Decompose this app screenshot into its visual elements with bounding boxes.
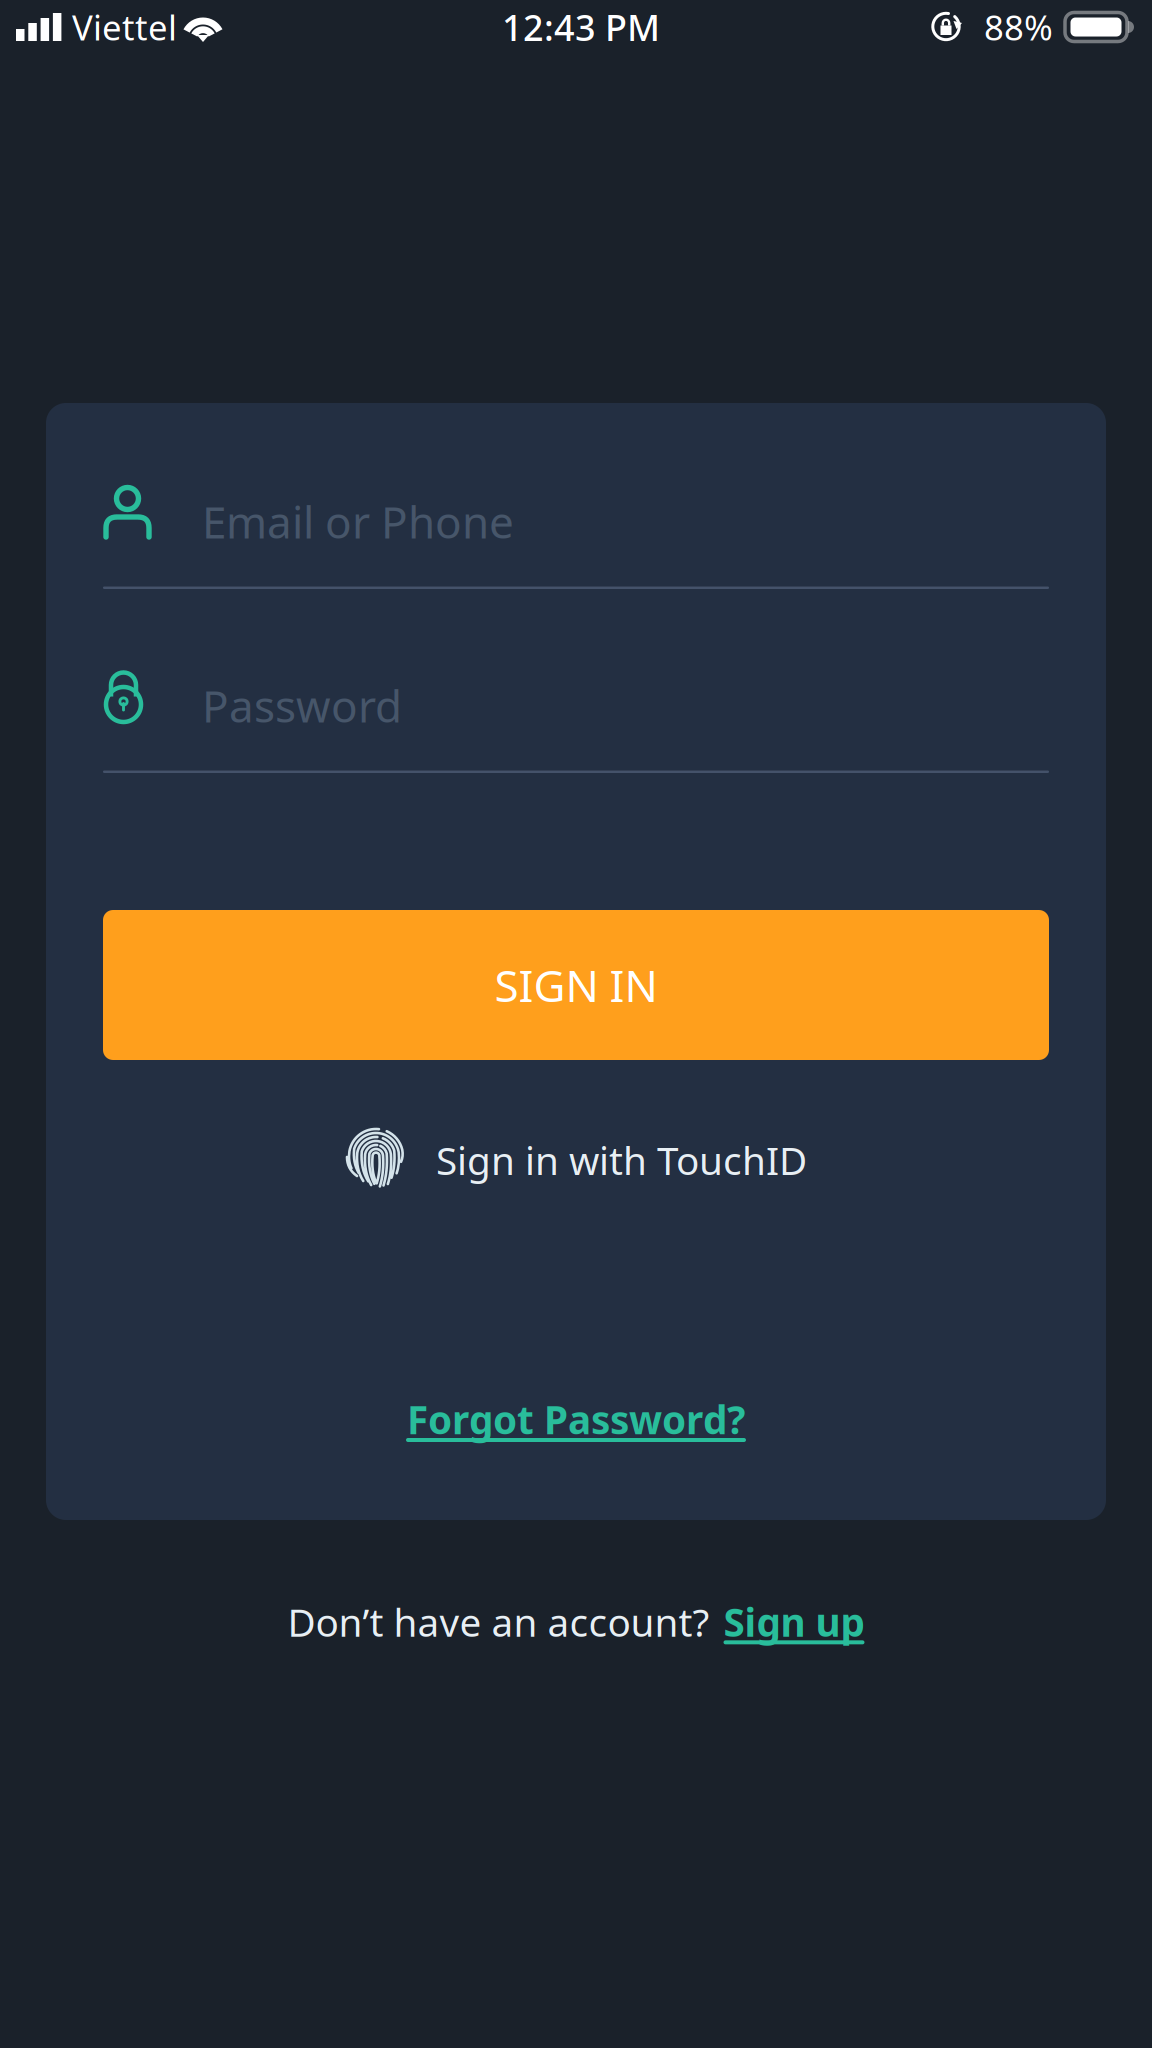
staticText: Sign in with TouchID — [436, 1134, 807, 1186]
staticText: Viettel — [72, 4, 177, 50]
button[interactable]: SIGN IN — [103, 910, 1049, 1060]
staticText: 12:43 PM — [502, 3, 660, 51]
staticText: Don’t have an account? — [287, 1596, 709, 1647]
button[interactable]: Don’t have an account? — [287, 1596, 864, 1647]
button[interactable]: Forgot Password? — [103, 1394, 1049, 1445]
staticText: Email or Phone — [202, 492, 514, 551]
staticText: Password — [202, 676, 402, 735]
button[interactable]: Sign in with TouchID — [103, 1129, 1049, 1191]
staticText: Sign up — [723, 1596, 864, 1647]
staticText: 88% — [984, 4, 1053, 50]
staticText: Forgot Password? — [407, 1394, 745, 1445]
staticText: SIGN IN — [494, 956, 657, 1014]
